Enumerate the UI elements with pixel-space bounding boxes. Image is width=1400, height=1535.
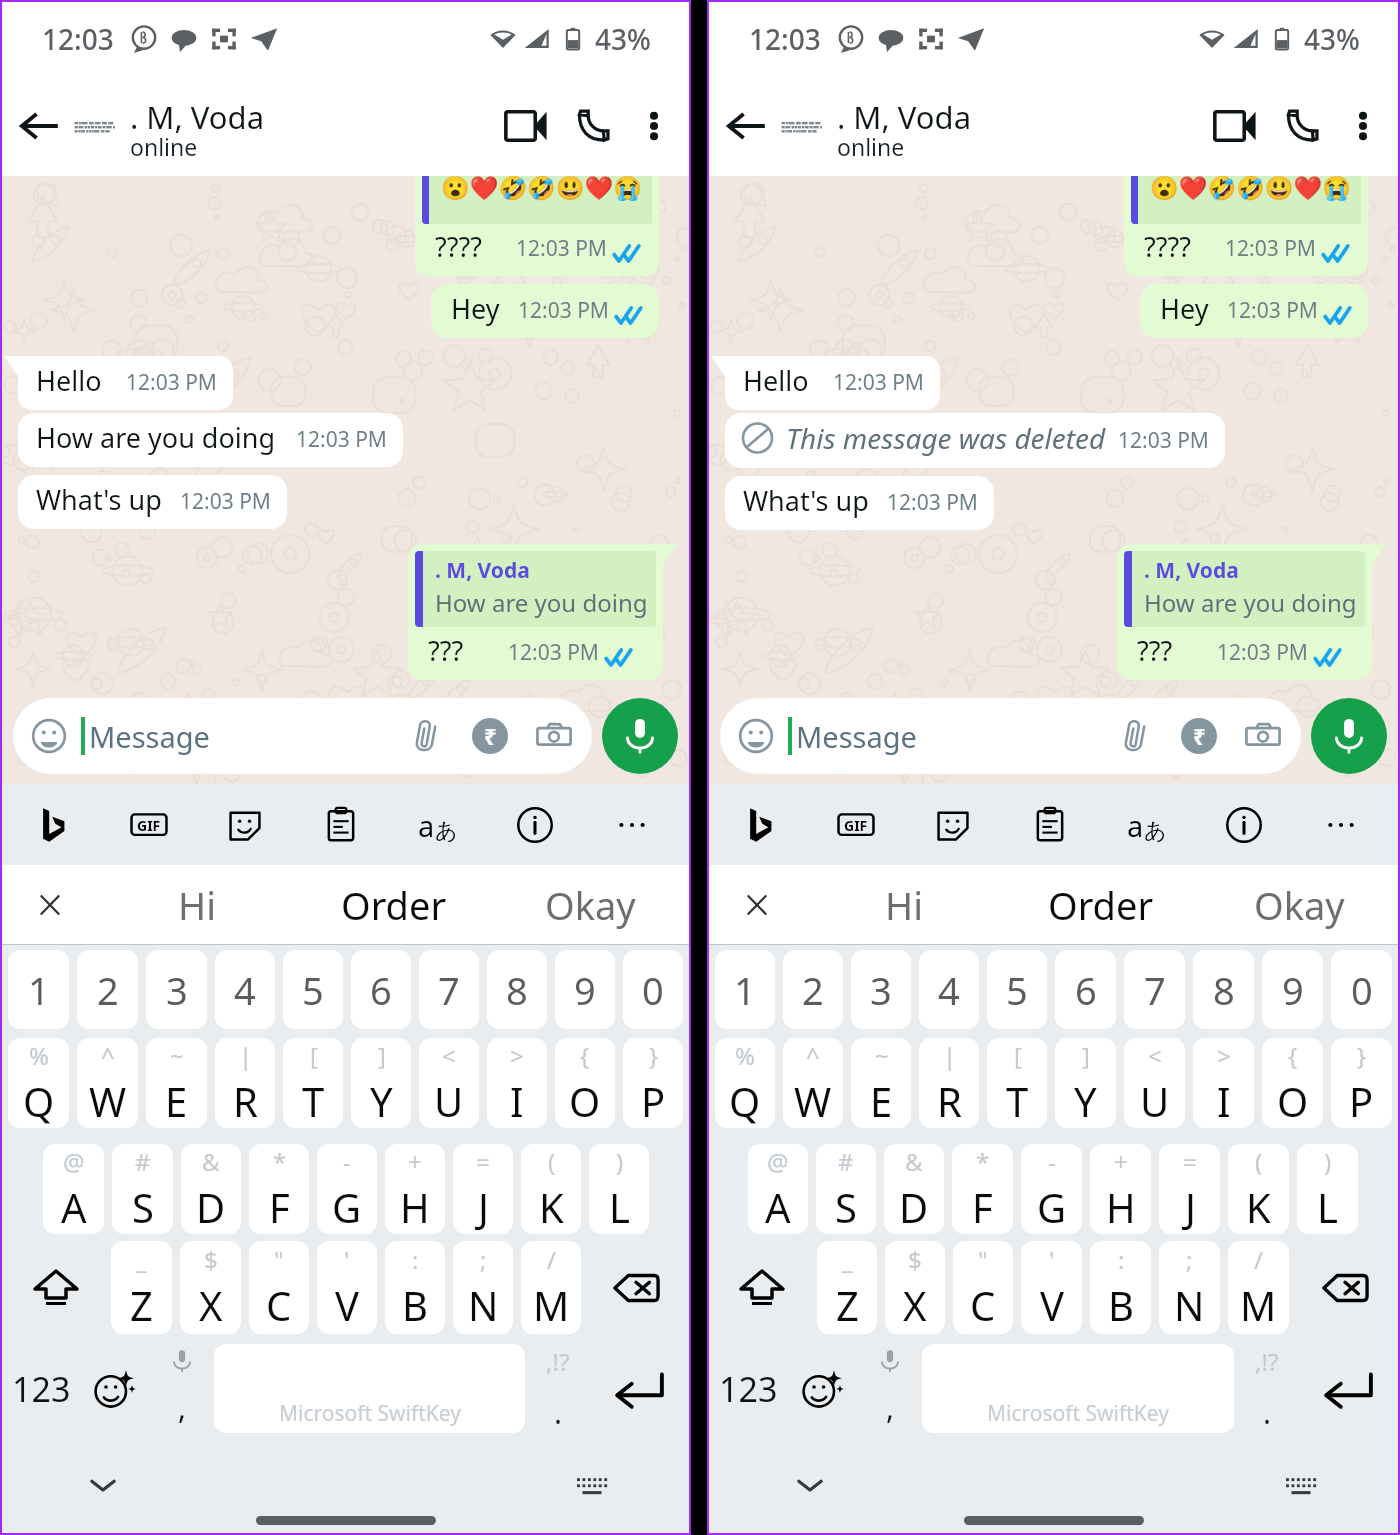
button[interactable]: * [952,1144,1013,1234]
button[interactable]: Microsoft SwiftKey [214,1344,525,1433]
button[interactable]: @ [748,1144,808,1234]
button[interactable]: . M, Voda [1117,544,1386,680]
button[interactable]: Enter [1299,1344,1396,1433]
button[interactable]: / [521,1241,581,1334]
button[interactable]: 6 [351,950,411,1029]
button[interactable]: 9 [555,950,615,1029]
button[interactable]: Video call [1202,93,1268,159]
button[interactable]: * [249,1144,309,1234]
button[interactable]: Back [8,95,70,157]
button[interactable]: Bing [26,798,80,852]
button[interactable]: > [1193,1038,1254,1128]
button[interactable]: % [8,1038,69,1128]
button[interactable]: What's up [725,476,994,530]
button[interactable]: 😮❤️🤣🤣😃❤️😭 [1124,176,1382,276]
button[interactable]: Hey [431,284,659,338]
button[interactable]: , [149,1344,214,1433]
button[interactable]: Hello [4,356,233,410]
button[interactable]: ' [317,1241,377,1334]
button[interactable]: + [385,1144,445,1234]
button[interactable]: 123 [4,1344,78,1433]
button[interactable]: ^ [77,1038,138,1128]
button[interactable]: - [1021,1144,1082,1234]
button[interactable]: 3 [146,950,207,1029]
button[interactable]: 123 [711,1344,786,1433]
button[interactable]: What's up [18,475,287,529]
button[interactable]: 2 [783,950,843,1029]
button[interactable]: Info [1217,798,1271,852]
button[interactable]: Hey [1140,284,1368,338]
button[interactable]: < [1124,1038,1185,1128]
button[interactable]: 4 [919,950,979,1029]
button[interactable]: - [317,1144,377,1234]
button[interactable]: 0 [1331,950,1392,1029]
button[interactable]: Voice call [559,93,625,159]
button[interactable]: $ [885,1241,945,1334]
button[interactable]: Shift [711,1241,813,1334]
button[interactable]: = [1159,1144,1220,1234]
button[interactable]: Backspace [585,1241,687,1334]
button[interactable]: ; [453,1241,513,1334]
button[interactable]: ,!? [1234,1344,1299,1433]
button[interactable]: Message [720,698,1301,774]
button[interactable]: 😮❤️🤣🤣😃❤️😭 [415,176,673,276]
button[interactable]: ^ [783,1038,843,1128]
button[interactable]: GIF [829,798,883,852]
button[interactable]: 7 [1124,950,1185,1029]
button[interactable]: / [1228,1241,1289,1334]
button[interactable]: How are you doing [18,413,403,467]
button[interactable]: More options [1334,97,1392,155]
button[interactable]: ; [1159,1241,1220,1334]
button[interactable]: 2 [77,950,138,1029]
button[interactable]: Order [1002,865,1200,944]
button[interactable]: Hide keyboard [787,1463,833,1507]
button[interactable]: " [953,1241,1013,1334]
button[interactable]: Voice call [1268,93,1334,159]
button[interactable]: Info [508,798,562,852]
button[interactable]: 9 [1262,950,1323,1029]
button[interactable]: 6 [1055,950,1116,1029]
button[interactable]: ] [1055,1038,1116,1128]
button[interactable]: Hello [711,356,940,410]
button[interactable]: Shift [4,1241,107,1334]
button[interactable]: ( [521,1144,581,1234]
button[interactable]: { [555,1038,615,1128]
button[interactable]: [ [283,1038,343,1128]
button[interactable]: Translate [1120,798,1174,852]
button[interactable]: Keyboard settings [569,1463,615,1507]
button[interactable]: Message [13,698,592,774]
button[interactable]: Clipboard [1023,798,1077,852]
button[interactable]: | [919,1038,979,1128]
button[interactable]: @ [43,1144,104,1234]
button[interactable]: Okay [492,865,689,944]
button[interactable]: Record voice message [1311,698,1387,774]
button[interactable]: GIF [122,798,176,852]
button[interactable]: ' [1021,1241,1082,1334]
button[interactable]: Emoji [78,1344,149,1433]
button[interactable]: : [385,1241,445,1334]
button[interactable]: Okay [1200,865,1398,944]
button[interactable]: Hi [98,865,295,944]
button[interactable]: Enter [590,1344,687,1433]
button[interactable]: ) [1297,1144,1358,1234]
button[interactable]: , [857,1344,922,1433]
button[interactable]: 1 [8,950,69,1029]
button[interactable]: 8 [1193,950,1254,1029]
button[interactable]: 7 [419,950,479,1029]
button[interactable]: 5 [987,950,1047,1029]
button[interactable]: Stickers [218,798,272,852]
button[interactable]: More [605,798,659,852]
button[interactable]: _ [817,1241,877,1334]
button[interactable]: < [419,1038,479,1128]
button[interactable]: . M, Voda [408,544,677,680]
button[interactable]: ] [351,1038,411,1128]
button[interactable]: Order [295,865,492,944]
button[interactable]: Backspace [1293,1241,1396,1334]
button[interactable]: Keyboard settings [1278,1463,1324,1507]
button[interactable]: 8 [487,950,547,1029]
button[interactable]: Hide keyboard [80,1463,126,1507]
button[interactable]: | [215,1038,275,1128]
button[interactable]: Microsoft SwiftKey [922,1344,1234,1433]
button[interactable]: : [1090,1241,1151,1334]
button[interactable]: Clipboard [314,798,368,852]
